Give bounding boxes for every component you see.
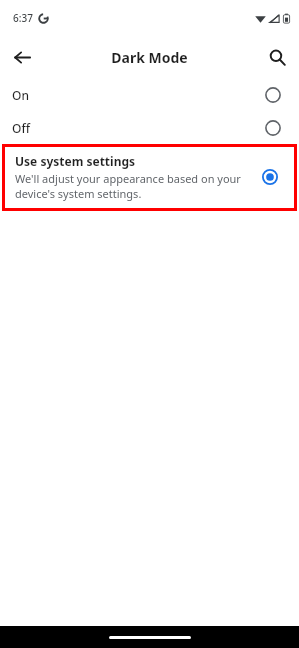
button[interactable]: Back [4, 39, 40, 75]
staticText: Use system settings [15, 153, 136, 169]
staticText: 6:37 [13, 11, 33, 25]
staticText: Off [12, 120, 265, 136]
staticText: On [12, 87, 265, 103]
staticText: We'll adjust your appearance based on yo… [15, 171, 256, 201]
button[interactable]: Use system settings [5, 147, 294, 208]
staticText: Dark Mode [111, 48, 188, 67]
button[interactable]: Search [259, 39, 295, 75]
button[interactable]: On [0, 78, 299, 111]
button[interactable]: Off [0, 111, 299, 144]
